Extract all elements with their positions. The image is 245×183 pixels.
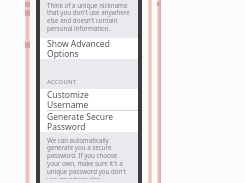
staticText: ACCOUNT [47, 78, 77, 86]
staticText: Customize Username [47, 89, 132, 110]
staticText: We can automatically generate you a secu… [47, 136, 130, 179]
button[interactable]: Show Advanced Options [40, 38, 138, 59]
button[interactable]: Generate Secure Password [40, 111, 138, 132]
button[interactable]: Customize Username [40, 89, 138, 110]
staticText: Think of a unique nickname that you don'… [47, 1, 130, 33]
staticText: Show Advanced Options [47, 38, 132, 59]
staticText: Generate Secure Password [47, 111, 132, 132]
